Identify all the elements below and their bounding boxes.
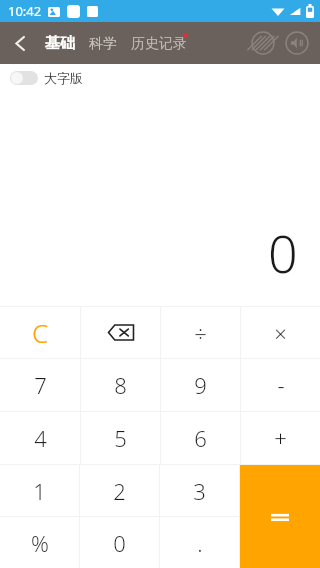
staticText: 3 [193, 476, 206, 506]
staticText: × [274, 318, 287, 348]
staticText: 2 [113, 476, 126, 506]
button[interactable]: . [160, 517, 239, 568]
button[interactable]: Backspace [81, 307, 160, 358]
button[interactable]: 基础 [43, 34, 77, 53]
button[interactable]: - [241, 359, 320, 411]
staticText: 科学 [89, 35, 117, 53]
button[interactable]: 1 [0, 465, 79, 516]
button[interactable]: 0 [80, 517, 159, 568]
staticText: 6 [194, 423, 207, 453]
staticText: 9 [194, 370, 207, 400]
button[interactable]: 5 [81, 412, 160, 464]
button[interactable]: 7 [0, 359, 80, 411]
staticText: 7 [34, 370, 47, 400]
staticText: 10:42 [8, 2, 42, 20]
button[interactable]: 4 [0, 412, 80, 464]
staticText: % [31, 528, 49, 558]
button[interactable]: 大字版 [0, 64, 320, 92]
staticText: . [197, 528, 203, 558]
staticText: 历史记录 [131, 35, 187, 53]
button[interactable]: Vibration off [246, 26, 280, 60]
staticText: 基础 [45, 34, 75, 53]
staticText: - [277, 370, 285, 400]
staticText: 8 [114, 370, 127, 400]
button[interactable]: 2 [80, 465, 159, 516]
staticText: 5 [114, 423, 127, 453]
button[interactable]: % [0, 517, 79, 568]
staticText: 4 [34, 423, 47, 453]
button[interactable]: 3 [160, 465, 239, 516]
staticText: ÷ [194, 318, 207, 348]
button[interactable]: 科学 [87, 35, 119, 53]
button[interactable]: Back [0, 23, 40, 63]
staticText: 1 [33, 476, 46, 506]
button[interactable]: 6 [161, 412, 240, 464]
button[interactable]: C [0, 307, 80, 358]
staticText: 0 [268, 217, 298, 288]
staticText: 0 [113, 528, 126, 558]
button[interactable]: Equals [240, 465, 320, 568]
button[interactable]: 9 [161, 359, 240, 411]
button[interactable]: ÷ [161, 307, 240, 358]
button[interactable]: 8 [81, 359, 160, 411]
staticText: + [274, 423, 287, 453]
button[interactable]: × [241, 307, 320, 358]
button[interactable]: + [241, 412, 320, 464]
button[interactable]: 历史记录 [129, 35, 189, 53]
button[interactable]: Sound [280, 26, 314, 60]
staticText: 大字版 [44, 70, 83, 86]
staticText: C [32, 315, 49, 350]
